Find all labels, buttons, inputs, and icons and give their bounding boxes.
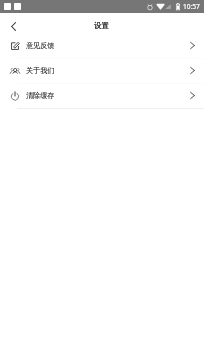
button[interactable]: 清除缓存: [0, 83, 204, 108]
button[interactable]: Back: [0, 16, 26, 36]
staticText: 设置: [94, 21, 110, 31]
button[interactable]: 关于我们: [0, 58, 204, 83]
staticText: 清除缓存: [26, 91, 55, 100]
staticText: 意见反馈: [26, 41, 55, 50]
button[interactable]: 意见反馈: [0, 33, 204, 58]
staticText: 设置: [94, 21, 110, 31]
staticText: 意见反馈: [26, 41, 55, 50]
staticText: 清除缓存: [26, 91, 55, 100]
staticText: 10:57: [183, 2, 200, 11]
staticText: 关于我们: [26, 66, 55, 75]
staticText: 设置: [94, 21, 110, 31]
staticText: 关于我们: [26, 66, 55, 75]
